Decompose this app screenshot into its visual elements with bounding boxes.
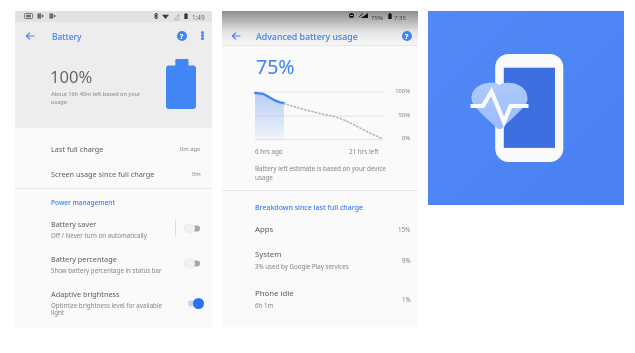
staticText: Adaptive brightness: [51, 289, 120, 299]
staticText: 6 hrs ago: [255, 147, 283, 156]
staticText: 1:49: [192, 13, 205, 22]
staticText: Battery saver: [51, 219, 97, 229]
staticText: Off / Never turn on automatically: [51, 231, 147, 239]
staticText: ?: [180, 32, 184, 41]
staticText: 3% used by Google Play services: [255, 262, 349, 270]
staticText: Apps: [255, 224, 274, 235]
button[interactable]: Screen usage since full charge: [15, 161, 212, 187]
staticText: Screen usage since full charge: [51, 169, 155, 179]
button[interactable]: Adaptive brightness: [15, 283, 212, 323]
staticText: Battery left estimate is based on your d…: [255, 164, 386, 182]
button[interactable]: Last full charge: [15, 136, 212, 161]
staticText: 100%: [50, 65, 93, 88]
staticText: System: [255, 249, 282, 260]
staticText: Advanced battery usage: [256, 31, 358, 43]
button[interactable]: Apps: [222, 216, 418, 242]
staticText: 0m ago: [180, 145, 201, 153]
staticText: 1%: [402, 295, 411, 303]
staticText: 21 hrs left: [349, 147, 379, 156]
staticText: Battery: [52, 31, 82, 42]
button[interactable]: Back: [18, 24, 42, 48]
staticText: ?: [405, 32, 409, 41]
staticText: Last full charge: [51, 144, 104, 154]
staticText: Show battery percentage in status bar: [51, 266, 162, 274]
button[interactable]: Back: [224, 24, 248, 48]
staticText: Breakdown since last full charge: [255, 203, 363, 213]
button[interactable]: More options: [193, 24, 212, 47]
button[interactable]: Battery percentage: [15, 248, 212, 281]
staticText: 15%: [398, 225, 411, 233]
button[interactable]: Battery saver: [15, 213, 212, 245]
staticText: 6h 1m: [255, 301, 274, 309]
staticText: About 16h 40m left based on your usage: [51, 90, 141, 106]
staticText: 75%: [256, 53, 295, 80]
staticText: 7:35: [394, 13, 407, 21]
staticText: 0%: [372, 134, 410, 142]
staticText: 75%: [371, 13, 384, 21]
button[interactable]: System: [222, 243, 418, 276]
button[interactable]: Breakdown since last full charge: [222, 195, 418, 221]
staticText: Optimize brightness level for available …: [51, 301, 163, 317]
staticText: 9%: [402, 256, 411, 264]
staticText: Battery percentage: [51, 254, 117, 264]
button[interactable]: Power management: [15, 189, 212, 215]
button[interactable]: Phone idle: [222, 282, 418, 315]
staticText: Phone idle: [255, 288, 294, 299]
button[interactable]: Help: [170, 24, 193, 47]
staticText: 100%: [372, 87, 410, 95]
staticText: Power management: [51, 198, 116, 207]
staticText: 50%: [372, 111, 410, 119]
button[interactable]: Help: [395, 24, 418, 47]
staticText: 0m: [192, 170, 201, 178]
